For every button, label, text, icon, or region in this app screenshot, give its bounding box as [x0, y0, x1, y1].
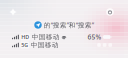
- staticText: 中国移动: [32, 33, 60, 41]
- staticText: 65%: [87, 33, 101, 41]
- staticText: HD: [21, 33, 29, 41]
- button[interactable]: 的“搜索”和“搜索”: [0, 19, 128, 31]
- button[interactable]: Siri: [4, 3, 22, 21]
- staticText: 的“搜索”和“搜索”: [44, 21, 94, 29]
- staticText: 中国移动: [31, 41, 59, 49]
- button[interactable]: Power: [101, 3, 119, 21]
- staticText: 5G: [21, 41, 28, 49]
